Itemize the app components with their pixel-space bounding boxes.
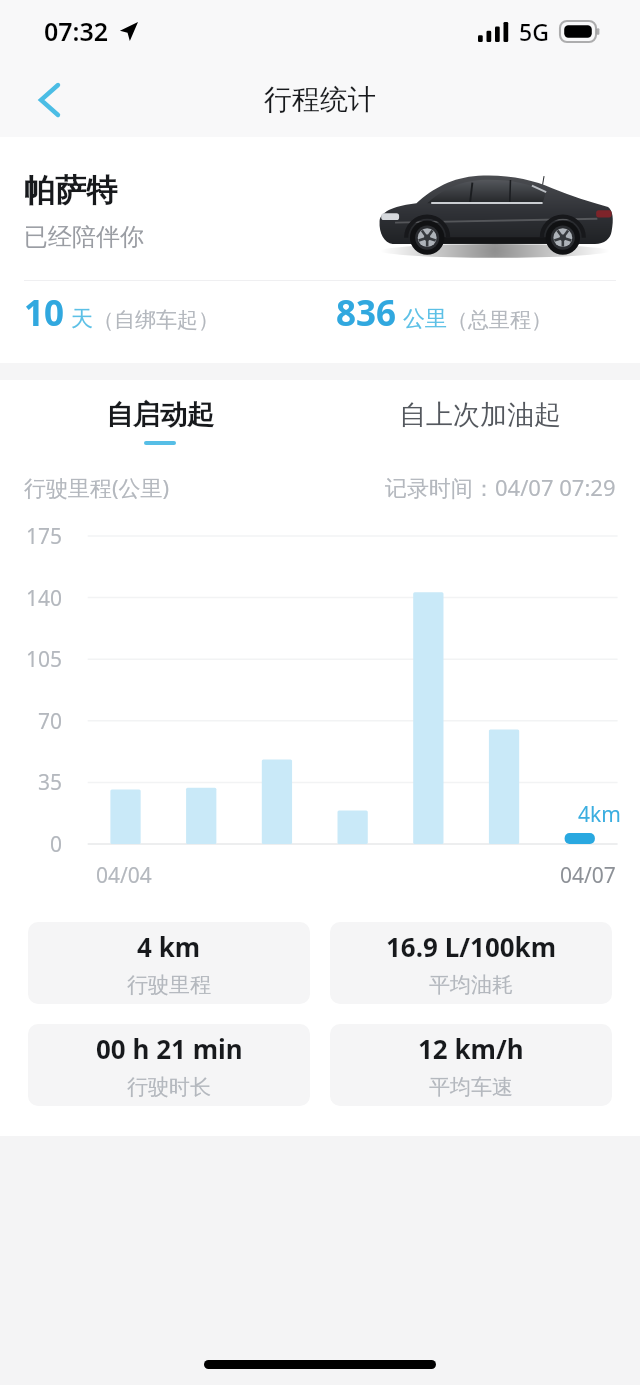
staticText: 140 — [0, 584, 62, 613]
staticText: 行驶里程 — [127, 972, 211, 998]
button[interactable]: 自启动起 — [0, 380, 320, 462]
staticText: 00 h 21 min — [96, 1031, 243, 1066]
staticText: 12 km/h — [418, 1031, 524, 1066]
staticText: （总里程） — [447, 307, 552, 333]
staticText: 已经陪伴你 — [24, 222, 144, 252]
staticText: 5G — [519, 16, 549, 47]
button[interactable]: 00 h 21 min — [28, 1024, 310, 1106]
staticText: （自绑车起） — [93, 307, 219, 333]
staticText: 自启动起 — [106, 398, 214, 432]
staticText: 07:32 — [44, 14, 109, 48]
button[interactable]: 自上次加油起 — [320, 380, 640, 462]
staticText: 35 — [0, 768, 62, 797]
staticText: 4 km — [137, 929, 201, 964]
staticText: 平均油耗 — [429, 972, 513, 998]
staticText: 70 — [0, 707, 62, 736]
staticText: 10 — [24, 289, 65, 337]
staticText: 836 — [336, 289, 397, 337]
staticText: 16.9 L/100km — [386, 929, 557, 964]
staticText: 行驶里程(公里) — [24, 472, 170, 502]
staticText: 行驶时长 — [127, 1074, 211, 1100]
staticText: 帕萨特 — [24, 171, 117, 210]
staticText: 平均车速 — [429, 1074, 513, 1100]
staticText: 4km — [578, 800, 621, 829]
staticText: 自上次加油起 — [399, 398, 561, 432]
button[interactable]: 16.9 L/100km — [330, 922, 612, 1004]
staticText: 天 — [71, 305, 93, 333]
button[interactable]: 12 km/h — [330, 1024, 612, 1106]
staticText: 04/04 — [96, 861, 152, 890]
staticText: 04/07 — [560, 861, 616, 890]
button[interactable]: Back — [20, 71, 78, 129]
staticText: 0 — [0, 830, 62, 859]
button[interactable]: 4 km — [28, 922, 310, 1004]
staticText: 175 — [0, 522, 62, 551]
staticText: 公里 — [403, 305, 447, 333]
staticText: 105 — [0, 645, 62, 674]
staticText: 行程统计 — [264, 82, 376, 117]
staticText: 记录时间：04/07 07:29 — [385, 472, 616, 502]
